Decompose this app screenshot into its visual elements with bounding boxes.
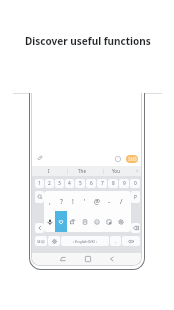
button[interactable]: Emoji	[113, 154, 122, 163]
staticText: /	[120, 197, 123, 206]
button[interactable]: Home	[82, 253, 94, 265]
button[interactable]: .	[110, 236, 121, 246]
button[interactable]: More suggestions	[133, 166, 141, 176]
staticText: 5	[79, 180, 82, 187]
staticText: -	[108, 197, 111, 206]
button[interactable]: 1	[35, 179, 44, 188]
button[interactable]: P	[131, 191, 140, 203]
staticText: 8	[112, 180, 115, 187]
staticText: '	[84, 197, 86, 206]
staticText: The	[78, 168, 86, 174]
button[interactable]: Keyboard settings	[48, 236, 60, 246]
button[interactable]: !#☺	[35, 236, 47, 246]
button[interactable]: '	[79, 191, 91, 211]
button[interactable]: Search	[35, 191, 44, 203]
staticText: 7	[101, 180, 104, 187]
button[interactable]: ,	[44, 191, 55, 211]
staticText: ‹ English(UK) ›	[73, 239, 97, 244]
button[interactable]: 9	[119, 179, 129, 188]
button[interactable]: Panel option 6	[115, 211, 127, 232]
staticText: I	[48, 168, 50, 174]
button[interactable]: You	[99, 166, 133, 176]
staticText: !#☺	[37, 239, 45, 244]
button[interactable]: Back	[106, 253, 118, 265]
staticText: 0	[134, 180, 137, 187]
button[interactable]: 2	[45, 179, 54, 188]
button[interactable]: 3	[55, 179, 64, 188]
button[interactable]: Recents	[57, 253, 69, 265]
staticText: 1	[38, 180, 41, 187]
staticText: 4	[68, 180, 71, 187]
button[interactable]: 4	[65, 179, 74, 188]
staticText: ,	[49, 197, 51, 206]
button[interactable]: I	[32, 166, 65, 176]
staticText: Discover useful functions	[25, 34, 151, 48]
staticText: ?	[60, 197, 63, 206]
button[interactable]: Shift	[35, 223, 44, 233]
staticText: 3	[58, 180, 61, 187]
button[interactable]: Stickers	[55, 211, 67, 232]
staticText: SMS	[128, 156, 137, 162]
button[interactable]: Panel option 4	[91, 211, 103, 232]
button[interactable]: The	[65, 166, 99, 176]
staticText: .	[115, 238, 117, 245]
button[interactable]: !	[67, 191, 79, 211]
button[interactable]: 5	[75, 179, 85, 188]
button[interactable]: ?	[55, 191, 67, 211]
staticText: 2	[48, 180, 51, 187]
staticText: @	[94, 197, 100, 206]
button[interactable]: Panel option 3	[79, 211, 91, 232]
button[interactable]: 0	[130, 179, 140, 188]
button[interactable]: 8	[108, 179, 118, 188]
button[interactable]: SMS	[126, 155, 138, 163]
staticText: 6	[90, 180, 93, 187]
staticText: !	[72, 197, 74, 206]
button[interactable]: Enter	[122, 236, 140, 246]
button[interactable]: /	[115, 191, 127, 211]
staticText: You	[112, 168, 120, 174]
button[interactable]: ‹ English(UK) ›	[61, 236, 109, 246]
button[interactable]: -	[103, 191, 115, 211]
button[interactable]: @	[91, 191, 103, 211]
button[interactable]: Voice input	[44, 211, 55, 232]
button[interactable]: Panel option 5	[103, 211, 115, 232]
staticText: 9	[123, 180, 126, 187]
button[interactable]: Backspace	[131, 223, 140, 233]
staticText: P	[134, 194, 137, 201]
button[interactable]: 6	[86, 179, 96, 188]
button[interactable]: Panel option 2	[67, 211, 79, 232]
button[interactable]: 7	[97, 179, 107, 188]
button[interactable]: Attach	[35, 153, 45, 163]
